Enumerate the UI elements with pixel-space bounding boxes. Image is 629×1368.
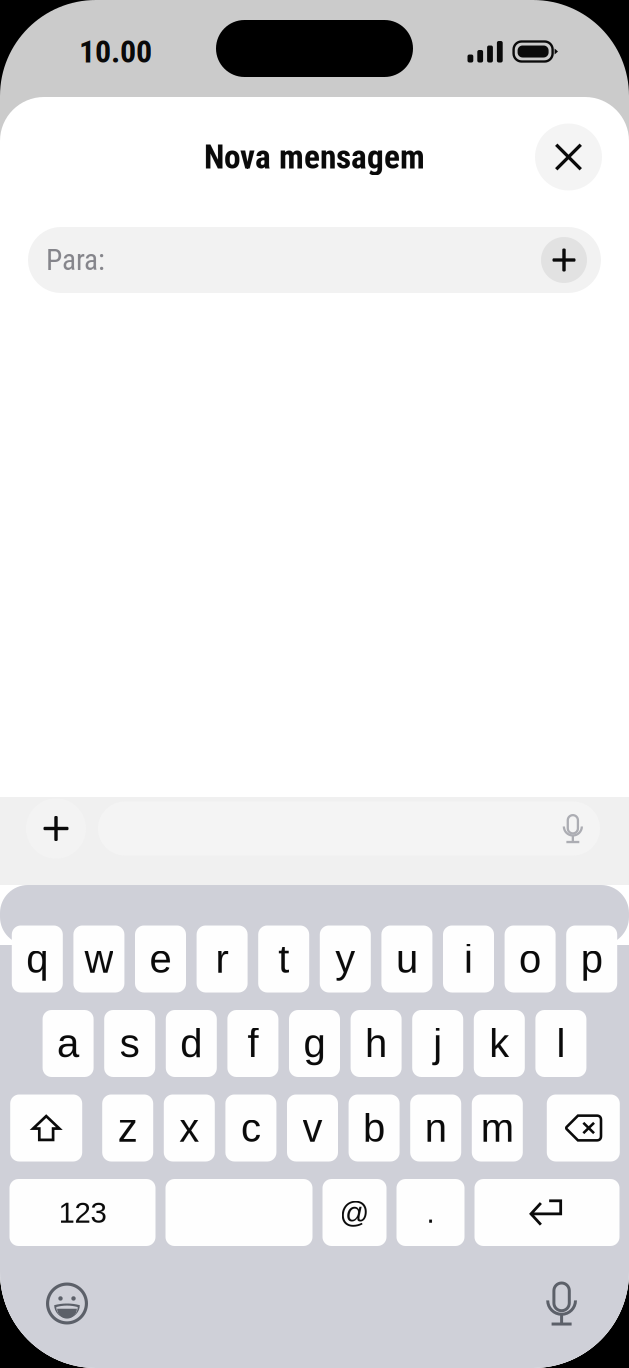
button[interactable]: 123 <box>9 1179 155 1246</box>
button[interactable]: w <box>73 925 124 992</box>
staticText: l <box>556 1021 565 1066</box>
staticText: r <box>216 937 229 981</box>
staticText: g <box>303 1021 325 1066</box>
button[interactable]: g <box>289 1010 340 1077</box>
staticText: q <box>26 937 48 981</box>
button[interactable]: Dictation <box>546 1281 577 1325</box>
button[interactable]: m <box>472 1094 523 1161</box>
button[interactable]: j <box>412 1010 463 1077</box>
staticText: v <box>302 1106 322 1150</box>
button[interactable]: s <box>104 1010 155 1077</box>
button[interactable]: a <box>43 1010 94 1077</box>
button[interactable]: Emoji keyboard <box>46 1282 88 1324</box>
staticText: c <box>241 1106 261 1150</box>
button[interactable]: Shift <box>10 1094 82 1161</box>
button[interactable]: Space <box>165 1179 312 1246</box>
staticText: 10.00 <box>79 33 152 70</box>
button[interactable]: d <box>166 1010 217 1077</box>
staticText: b <box>363 1106 385 1150</box>
staticText: @ <box>339 1196 369 1229</box>
button[interactable]: Close <box>535 123 602 190</box>
button[interactable]: y <box>320 925 371 992</box>
staticText: u <box>396 937 418 981</box>
button[interactable]: c <box>225 1094 276 1161</box>
button[interactable]: t <box>258 925 309 992</box>
staticText: 123 <box>58 1196 106 1229</box>
button[interactable]: b <box>349 1094 400 1161</box>
button[interactable]: Attachments <box>26 798 86 858</box>
button[interactable]: o <box>505 925 556 992</box>
staticText: e <box>149 937 171 981</box>
button[interactable]: @ <box>322 1179 386 1246</box>
staticText: f <box>247 1021 258 1066</box>
button[interactable]: z <box>102 1094 153 1161</box>
button[interactable]: k <box>474 1010 525 1077</box>
button[interactable]: v <box>287 1094 338 1161</box>
staticText: Nova mensagem <box>204 137 425 177</box>
button[interactable]: . <box>396 1179 464 1246</box>
button[interactable]: q <box>12 925 63 992</box>
staticText: o <box>519 937 541 981</box>
staticText: a <box>57 1021 79 1066</box>
staticText: z <box>118 1106 138 1150</box>
staticText: h <box>365 1021 387 1066</box>
staticText: i <box>464 937 473 981</box>
button[interactable]: l <box>535 1010 586 1077</box>
staticText: . <box>426 1196 434 1229</box>
staticText: k <box>489 1021 509 1066</box>
button[interactable]: r <box>197 925 248 992</box>
button[interactable]: Add recipient <box>541 237 587 283</box>
staticText: s <box>120 1021 140 1066</box>
staticText: p <box>581 937 603 981</box>
staticText: d <box>180 1021 202 1066</box>
button[interactable]: e <box>135 925 186 992</box>
button[interactable]: f <box>227 1010 278 1077</box>
button[interactable]: Delete <box>547 1094 620 1161</box>
staticText: n <box>425 1106 447 1150</box>
button[interactable]: h <box>351 1010 402 1077</box>
staticText: Para: <box>46 243 105 277</box>
button[interactable]: n <box>410 1094 461 1161</box>
staticText: j <box>433 1021 442 1066</box>
staticText: y <box>335 937 355 981</box>
button[interactable]: x <box>164 1094 215 1161</box>
staticText: t <box>278 937 289 981</box>
staticText: w <box>84 937 113 981</box>
button[interactable]: u <box>381 925 432 992</box>
button[interactable]: Return <box>474 1179 619 1246</box>
button[interactable]: i <box>443 925 494 992</box>
staticText: x <box>179 1106 199 1150</box>
button[interactable]: p <box>566 925 617 992</box>
staticText: m <box>481 1106 514 1150</box>
